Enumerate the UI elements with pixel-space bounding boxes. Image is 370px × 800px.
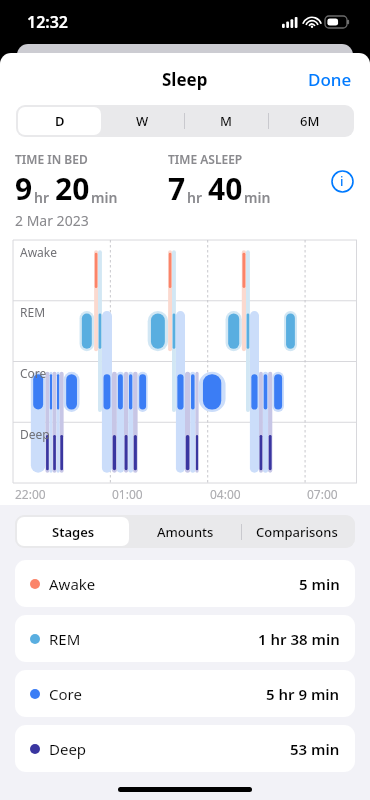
staticText: 7 — [168, 168, 186, 209]
button[interactable]: W — [101, 107, 184, 135]
button[interactable]: Comparisons — [241, 517, 353, 546]
staticText: 22:00 — [15, 486, 46, 502]
button[interactable]: 6M — [268, 107, 352, 135]
button[interactable]: REM — [15, 615, 355, 662]
staticText: Stages — [52, 523, 95, 541]
button[interactable]: Deep — [15, 725, 355, 772]
staticText: Comparisons — [256, 523, 338, 541]
staticText: Amounts — [157, 523, 214, 541]
button[interactable]: D — [18, 107, 101, 135]
staticText: Awake — [20, 244, 58, 260]
staticText: Deep — [49, 739, 87, 759]
staticText: Awake — [49, 574, 96, 594]
staticText: Deep — [20, 426, 50, 442]
staticText: Core — [49, 684, 82, 704]
button[interactable]: M — [184, 107, 268, 135]
staticText: i — [340, 172, 344, 190]
staticText: 07:00 — [307, 486, 338, 502]
staticText: TIME ASLEEP — [168, 151, 243, 167]
staticText: D — [55, 112, 65, 130]
staticText: REM — [20, 304, 46, 320]
staticText: Core — [20, 365, 47, 381]
staticText: 12:32 — [27, 11, 69, 33]
staticText: min — [91, 188, 118, 207]
staticText: Done — [308, 68, 352, 91]
staticText: 1 hr 38 min — [258, 629, 340, 649]
staticText: hr — [187, 188, 203, 207]
staticText: 53 min — [290, 739, 340, 759]
button[interactable]: Core — [15, 670, 355, 717]
staticText: 6M — [300, 112, 320, 130]
staticText: min — [244, 188, 271, 207]
staticText: W — [136, 112, 149, 130]
button[interactable]: Done — [290, 60, 370, 99]
button[interactable]: Amounts — [129, 517, 241, 546]
staticText: 5 min — [299, 574, 340, 594]
staticText: Sleep — [162, 68, 208, 91]
staticText: 5 hr 9 min — [266, 684, 340, 704]
staticText: 04:00 — [210, 486, 241, 502]
staticText: 9 — [15, 168, 33, 209]
staticText: 2 Mar 2023 — [15, 211, 89, 230]
staticText: TIME IN BED — [15, 151, 88, 167]
staticText: 20 — [55, 168, 90, 209]
button[interactable]: Information — [328, 167, 356, 195]
staticText: M — [220, 112, 232, 130]
staticText: 40 — [208, 168, 243, 209]
button[interactable]: Stages — [17, 517, 129, 546]
button[interactable]: Awake — [15, 560, 355, 607]
staticText: hr — [34, 188, 50, 207]
staticText: REM — [49, 629, 81, 649]
staticText: 01:00 — [112, 486, 143, 502]
